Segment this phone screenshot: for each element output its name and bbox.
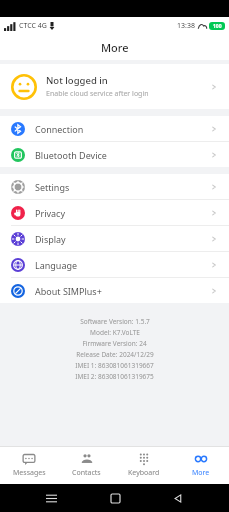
staticText: Enable cloud service after login — [46, 89, 149, 99]
staticText: About SIMPlus+ — [35, 285, 210, 297]
staticText: Contacts — [72, 468, 101, 478]
staticText: Connection — [35, 123, 210, 135]
button[interactable]: Connection — [0, 116, 229, 141]
button[interactable]: Not logged in — [0, 64, 229, 109]
button[interactable]: Display — [0, 226, 229, 251]
button[interactable]: More — [172, 447, 229, 484]
staticText: IMEI 2: 863081061319675 — [75, 372, 154, 381]
button[interactable]: Settings — [0, 174, 229, 199]
button[interactable]: Back — [166, 486, 190, 510]
button[interactable]: Messages — [0, 447, 58, 484]
staticText: Settings — [35, 181, 210, 193]
staticText: Display — [35, 233, 210, 245]
button[interactable]: Contacts — [58, 447, 115, 484]
staticText: Bluetooth Device — [35, 149, 210, 161]
button[interactable]: Keyboard — [115, 447, 172, 484]
button[interactable]: Bluetooth Device — [0, 142, 229, 167]
staticText: More — [192, 468, 210, 478]
staticText: Software Version: 1.5.7 — [80, 317, 150, 326]
staticText: Language — [35, 259, 210, 271]
staticText: 100 — [213, 23, 222, 30]
staticText: 13:38 — [177, 21, 195, 31]
button[interactable]: Privacy — [0, 200, 229, 225]
staticText: CTCC 4G — [19, 21, 47, 31]
staticText: Firmware Version: 24 — [82, 339, 147, 348]
staticText: Not logged in — [46, 74, 108, 87]
staticText: Keyboard — [128, 468, 160, 478]
button[interactable]: About SIMPlus+ — [0, 278, 229, 303]
staticText: More — [101, 40, 129, 55]
staticText: IMEI 1: 863081061319667 — [75, 361, 154, 370]
staticText: Privacy — [35, 207, 210, 219]
staticText: Model: K7.VoLTE — [90, 328, 140, 337]
button[interactable]: Language — [0, 252, 229, 277]
button[interactable]: Recents — [39, 486, 63, 510]
staticText: Release Date: 2024/12/29 — [76, 350, 154, 359]
button[interactable]: Home — [103, 486, 127, 510]
staticText: Messages — [13, 468, 46, 478]
